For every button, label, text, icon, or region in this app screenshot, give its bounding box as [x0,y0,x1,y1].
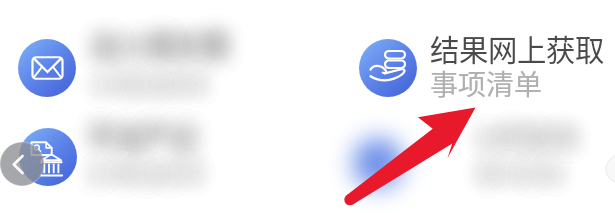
button[interactable]: Back [0,0,615,213]
